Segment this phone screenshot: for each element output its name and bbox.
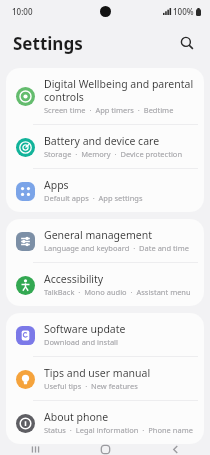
- staticText: Software update: [44, 322, 126, 336]
- staticText: About phone: [44, 410, 109, 424]
- staticText: Apps: [44, 178, 69, 192]
- staticText: Settings: [13, 32, 83, 55]
- staticText: General management: [44, 228, 152, 242]
- staticText: Storage · Memory · Device protection: [44, 149, 183, 159]
- staticText: Battery and device care: [44, 134, 160, 148]
- button[interactable]: Accessibility: [6, 263, 204, 306]
- button[interactable]: General management: [6, 219, 204, 262]
- staticText: Download and install: [44, 337, 118, 347]
- staticText: Default apps · App settings: [44, 193, 143, 203]
- button[interactable]: Battery and device care: [6, 125, 204, 168]
- button[interactable]: Apps: [6, 169, 204, 212]
- button[interactable]: Search: [174, 30, 200, 56]
- staticText: Accessibility: [44, 272, 104, 286]
- staticText: 10:00: [12, 6, 33, 17]
- button[interactable]: About phone: [6, 401, 204, 444]
- staticText: Status · Legal information · Phone name: [44, 425, 193, 435]
- button[interactable]: Back: [140, 444, 210, 455]
- staticText: TalkBack · Mono audio · Assistant menu: [44, 287, 191, 297]
- staticText: Tips and user manual: [44, 366, 151, 380]
- staticText: Screen time · App timers · Bedtime mode: [44, 105, 194, 115]
- button[interactable]: Home: [70, 444, 140, 455]
- staticText: Language and keyboard · Date and time: [44, 243, 189, 253]
- button[interactable]: Software update: [6, 313, 204, 356]
- button[interactable]: Digital Wellbeing and parental controls: [6, 68, 204, 124]
- staticText: Useful tips · New features: [44, 381, 138, 391]
- staticText: Digital Wellbeing and parental controls: [44, 77, 194, 104]
- button[interactable]: Tips and user manual: [6, 357, 204, 400]
- button[interactable]: Recent apps: [0, 444, 70, 455]
- staticText: 100%: [173, 6, 194, 17]
